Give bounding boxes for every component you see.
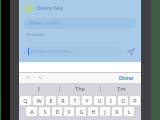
button[interactable]: W bbox=[33, 96, 44, 105]
staticText: T bbox=[73, 97, 77, 104]
button[interactable]: S bbox=[39, 107, 50, 116]
staticText: Y bbox=[85, 97, 89, 104]
staticText: Write a comment… bbox=[30, 48, 75, 55]
staticText: P bbox=[133, 97, 137, 104]
button[interactable]: Y bbox=[82, 96, 92, 105]
staticText: R bbox=[61, 97, 65, 104]
staticText: J bbox=[104, 108, 106, 115]
staticText: D bbox=[55, 108, 60, 115]
button[interactable]: E bbox=[46, 96, 56, 105]
staticText: I bbox=[110, 97, 112, 104]
button[interactable]: Previous field bbox=[24, 73, 33, 82]
button[interactable]: A bbox=[26, 107, 37, 116]
button[interactable]: Q bbox=[20, 96, 31, 105]
staticText: I'm bbox=[117, 85, 126, 92]
button[interactable]: Next field bbox=[36, 73, 45, 82]
staticText: S bbox=[43, 108, 47, 115]
button[interactable]: H bbox=[88, 107, 98, 116]
staticText: Q bbox=[23, 97, 28, 104]
button[interactable]: T bbox=[70, 96, 80, 105]
staticText: G bbox=[79, 108, 84, 115]
button[interactable]: When is this? bbox=[24, 18, 136, 29]
button[interactable]: Danny Aka bbox=[24, 4, 136, 13]
button[interactable]: Done bbox=[117, 72, 136, 83]
button[interactable]: R bbox=[58, 96, 68, 105]
staticText: W bbox=[36, 97, 42, 104]
button[interactable]: U bbox=[94, 96, 104, 105]
button[interactable]: D bbox=[52, 107, 62, 116]
staticText: Done bbox=[119, 74, 134, 81]
staticText: When is this? bbox=[29, 20, 60, 27]
button[interactable]: Send bbox=[125, 46, 136, 57]
staticText: A bbox=[30, 108, 34, 115]
button[interactable]: The bbox=[60, 83, 100, 94]
button[interactable]: I'm bbox=[101, 83, 141, 94]
button[interactable]: K bbox=[112, 107, 122, 116]
staticText: E bbox=[49, 97, 53, 104]
button[interactable]: I bbox=[106, 96, 116, 105]
staticText: H bbox=[91, 108, 96, 115]
staticText: K bbox=[115, 108, 119, 115]
button[interactable]: F bbox=[64, 107, 74, 116]
button[interactable]: L bbox=[124, 107, 134, 116]
button[interactable]: I bbox=[19, 83, 59, 94]
button[interactable]: J bbox=[100, 107, 110, 116]
button[interactable]: G bbox=[76, 107, 86, 116]
staticText: 30 minutes bbox=[26, 32, 45, 37]
button[interactable]: Write a comment… bbox=[24, 46, 121, 57]
button[interactable]: P bbox=[130, 96, 140, 105]
button[interactable]: O bbox=[118, 96, 128, 105]
staticText: U bbox=[97, 97, 102, 104]
staticText: The bbox=[75, 85, 85, 92]
staticText: F bbox=[68, 108, 71, 115]
staticText: O bbox=[121, 97, 126, 104]
staticText: I bbox=[38, 85, 40, 92]
staticText: Danny Aka bbox=[37, 5, 63, 12]
staticText: L bbox=[128, 108, 131, 115]
